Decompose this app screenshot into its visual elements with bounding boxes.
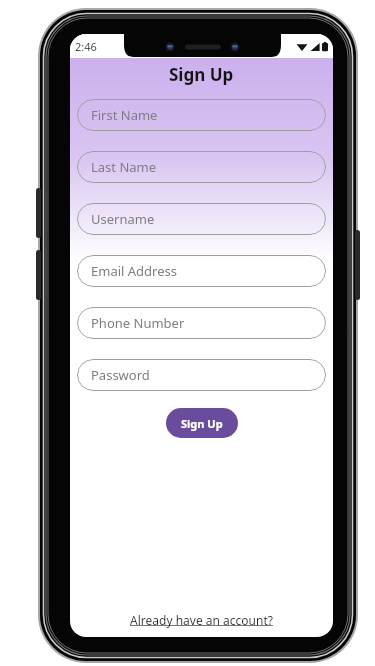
button[interactable]: Already have an account? <box>122 608 281 632</box>
staticText: Email Address <box>91 262 177 280</box>
staticText: 2:46 <box>75 39 97 54</box>
button[interactable]: Username <box>77 203 326 235</box>
button[interactable]: Password <box>77 359 326 391</box>
staticText: First Name <box>91 106 158 124</box>
staticText: Sign Up <box>181 416 223 431</box>
button[interactable]: Last Name <box>77 151 326 183</box>
staticText: Phone Number <box>91 314 185 332</box>
staticText: Username <box>91 210 155 228</box>
staticText: Already have an account? <box>130 612 273 628</box>
button[interactable]: First Name <box>77 99 326 131</box>
button[interactable]: Phone Number <box>77 307 326 339</box>
button[interactable]: Sign Up <box>166 408 238 438</box>
button[interactable]: Email Address <box>77 255 326 287</box>
staticText: Sign Up <box>169 63 234 86</box>
staticText: Password <box>91 366 150 384</box>
staticText: Last Name <box>91 158 157 176</box>
